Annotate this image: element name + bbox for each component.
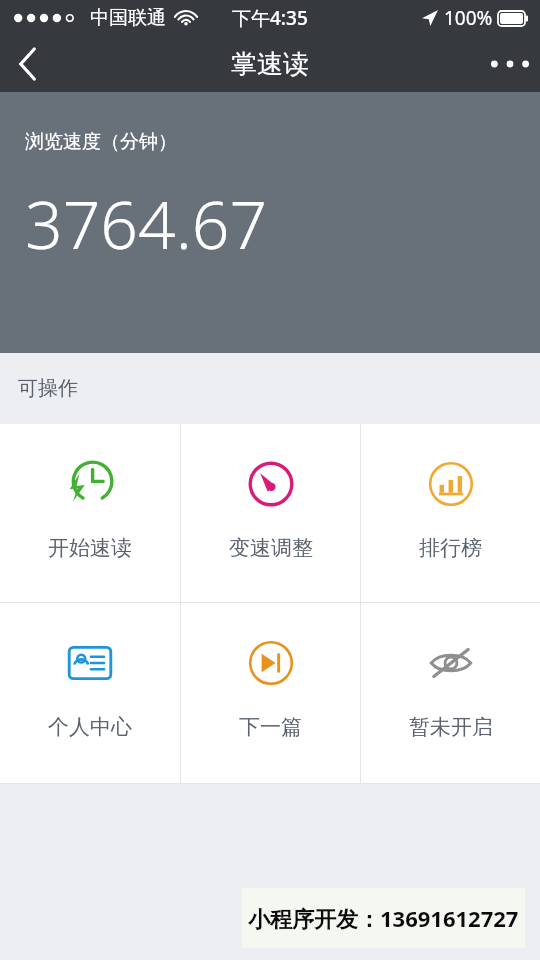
staticText: 开始速读 — [48, 535, 132, 561]
staticText: 排行榜 — [419, 535, 482, 561]
button[interactable]: 下一篇 — [181, 603, 360, 783]
button[interactable]: 变速调整 — [181, 424, 360, 602]
button[interactable]: 个人中心 — [0, 603, 180, 783]
staticText: 下午4:35 — [232, 5, 308, 31]
staticText: 变速调整 — [229, 535, 313, 561]
staticText: 3764.67 — [25, 178, 268, 268]
staticText: 小程序开发：13691612727 — [248, 903, 519, 933]
staticText: 下一篇 — [239, 714, 302, 740]
button[interactable]: 暂未开启 — [361, 603, 540, 783]
button[interactable]: Back — [0, 36, 56, 92]
staticText: 中国联通 — [90, 6, 166, 30]
staticText: 浏览速度（分钟） — [25, 130, 177, 154]
staticText: 100% — [444, 5, 493, 31]
staticText: 个人中心 — [48, 714, 132, 740]
staticText: 可操作 — [18, 376, 78, 401]
staticText: 暂未开启 — [409, 714, 493, 740]
button[interactable]: More options — [480, 36, 540, 92]
button[interactable]: 开始速读 — [0, 424, 180, 602]
staticText: 掌速读 — [231, 48, 309, 81]
button[interactable]: 排行榜 — [361, 424, 540, 602]
